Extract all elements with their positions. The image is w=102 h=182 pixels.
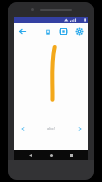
button[interactable]: Previous: [17, 123, 28, 134]
button[interactable]: Settings: [73, 25, 86, 38]
button[interactable]: Back: [26, 151, 35, 160]
staticText: abc!: [47, 126, 55, 131]
button[interactable]: Recent apps: [67, 151, 76, 160]
button[interactable]: Crop: [57, 25, 70, 38]
button[interactable]: Drawing canvas: [14, 39, 88, 120]
button[interactable]: Home: [47, 151, 56, 160]
button[interactable]: Next: [74, 123, 85, 134]
button[interactable]: Back: [16, 25, 29, 38]
button[interactable]: Delete: [41, 25, 54, 38]
